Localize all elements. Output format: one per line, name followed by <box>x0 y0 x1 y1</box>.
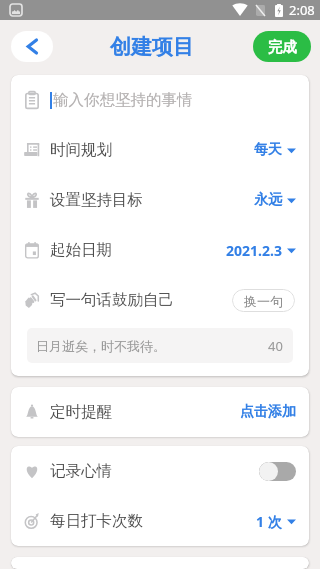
staticText: 40 <box>268 337 283 355</box>
staticText: 日月逝矣，时不我待。 <box>36 338 166 354</box>
button[interactable]: 每日打卡次数 <box>11 496 309 546</box>
button[interactable]: Toggle mood log <box>259 462 296 481</box>
staticText: 每日打卡次数 <box>50 511 143 531</box>
button[interactable]: 输入你想坚持的事情 <box>11 75 309 125</box>
button[interactable]: 设置坚持目标 <box>11 175 309 225</box>
button[interactable]: 换一句 <box>232 289 295 312</box>
staticText: 完成 <box>268 38 297 56</box>
button[interactable]: 定时提醒 <box>11 387 309 437</box>
staticText: 1 次 <box>256 512 282 531</box>
staticText: 记录心情 <box>50 461 112 481</box>
staticText: 点击添加 <box>240 403 296 421</box>
staticText: 起始日期 <box>50 240 112 260</box>
staticText: 写一句话鼓励自己 <box>50 290 174 310</box>
staticText: 定时提醒 <box>50 402 112 422</box>
staticText: 创建项目 <box>110 34 194 60</box>
staticText: 每天 <box>254 141 282 159</box>
staticText: 永远 <box>254 191 282 209</box>
staticText: 设置坚持目标 <box>50 190 143 210</box>
button[interactable]: 写一句话鼓励自己 <box>11 275 309 325</box>
button[interactable]: 起始日期 <box>11 225 309 275</box>
staticText: 2021.2.3 <box>226 241 282 260</box>
staticText: 换一句 <box>244 293 283 309</box>
button[interactable]: 时间规划 <box>11 125 309 175</box>
button[interactable]: 记录心情 <box>11 446 309 496</box>
staticText: 时间规划 <box>50 140 112 160</box>
button[interactable]: Back <box>11 31 53 62</box>
staticText: 2:08 <box>289 1 315 19</box>
staticText: 输入你想坚持的事情 <box>53 90 193 110</box>
button[interactable]: 完成 <box>253 31 311 62</box>
